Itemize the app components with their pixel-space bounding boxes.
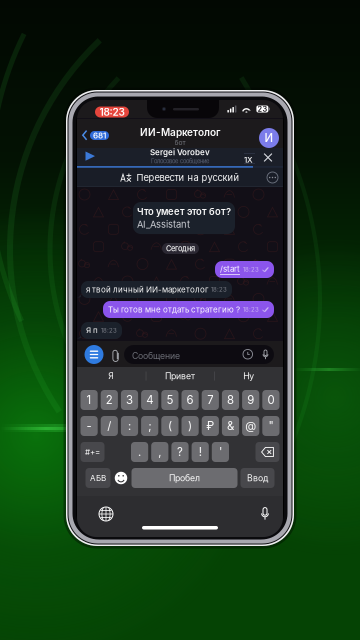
button[interactable]: Record voice message (259, 346, 272, 362)
staticText: 8 (227, 393, 234, 407)
button[interactable]: 3 (121, 390, 138, 410)
staticText: 18:23 (243, 306, 259, 313)
staticText: , (158, 445, 161, 459)
button[interactable]: 9 (242, 390, 259, 410)
button[interactable]: Close player (259, 149, 276, 166)
button[interactable]: #+= (80, 442, 104, 462)
staticText: 681 (93, 131, 106, 140)
staticText: 18:23 (243, 266, 259, 273)
button[interactable]: Я (77, 367, 146, 385)
staticText: Ну (243, 371, 254, 381)
staticText: ' (219, 445, 222, 459)
button[interactable]: Attach (107, 346, 123, 365)
staticText: 18:23 (211, 286, 227, 293)
button[interactable]: ( (161, 416, 178, 436)
staticText: ) (188, 419, 192, 433)
staticText: ! (199, 445, 202, 459)
staticText: 0 (267, 393, 274, 407)
staticText: Я (108, 371, 114, 381)
button[interactable]: 0 (262, 390, 279, 410)
button[interactable]: ) (181, 416, 199, 436)
button[interactable]: Profile (259, 128, 279, 148)
staticText: " (268, 419, 273, 433)
button[interactable]: & (222, 416, 239, 436)
button[interactable]: Switch keyboard language (94, 502, 118, 526)
staticText: /start (220, 264, 240, 274)
button[interactable]: Schedule message (240, 346, 255, 362)
button[interactable]: " (262, 416, 279, 436)
staticText: #+= (85, 447, 100, 457)
button[interactable]: ' (212, 442, 229, 462)
button[interactable]: АБВ (85, 468, 110, 488)
staticText: & (227, 419, 234, 433)
staticText: 2 (106, 393, 113, 407)
staticText: ₽ (206, 419, 214, 433)
staticText: / (107, 419, 111, 433)
staticText: Сегодня (166, 244, 195, 253)
staticText: AI_Assistant (137, 219, 190, 230)
staticText: 23 (257, 105, 267, 113)
button[interactable]: 2 (101, 390, 118, 410)
button[interactable]: Play voice message (80, 146, 100, 166)
button[interactable]: 4 (141, 390, 158, 410)
staticText: Что умеет этот бот? (137, 206, 231, 217)
button[interactable]: Emoji keyboard (113, 468, 128, 488)
staticText: Ты готов мне отдать стратегию ? (108, 305, 240, 314)
button[interactable]: 1 (80, 390, 98, 410)
button[interactable]: 8 (222, 390, 239, 410)
button[interactable]: - (80, 416, 98, 436)
staticText: Пробел (169, 473, 200, 483)
staticText: 1X (244, 155, 253, 165)
button[interactable]: / (101, 416, 118, 436)
staticText: 3 (126, 393, 133, 407)
button[interactable]: ; (141, 416, 158, 436)
staticText: 7 (207, 393, 213, 407)
staticText: Сообщение (132, 350, 180, 361)
button[interactable]: Ввод (240, 468, 274, 488)
button[interactable]: Back (77, 120, 115, 151)
button[interactable]: @ (242, 416, 259, 436)
staticText: ? (177, 445, 183, 459)
staticText: И (264, 131, 273, 145)
button[interactable]: Привет (146, 367, 214, 385)
staticText: ИИ-Маркетолог (140, 126, 220, 138)
staticText: Голосовое сообщение (151, 158, 209, 164)
staticText: Я п (86, 326, 98, 335)
staticText: Ввод (247, 473, 268, 483)
staticText: Перевести на русский (136, 172, 239, 183)
button[interactable]: Ну (214, 367, 283, 385)
staticText: ( (168, 419, 172, 433)
button[interactable]: 5 (161, 390, 178, 410)
staticText: 18:23 (99, 106, 124, 118)
staticText: - (87, 419, 92, 433)
staticText: 18:23 (101, 327, 117, 334)
staticText: Привет (165, 371, 195, 381)
button[interactable]: : (121, 416, 138, 436)
button[interactable]: , (151, 442, 168, 462)
staticText: 6 (187, 393, 194, 407)
button[interactable]: ! (192, 442, 209, 462)
button[interactable]: ? (171, 442, 189, 462)
staticText: бот (174, 138, 185, 147)
staticText: 4 (146, 393, 153, 407)
staticText: 5 (166, 393, 173, 407)
button[interactable]: Playback speed (241, 150, 258, 167)
button[interactable]: ₽ (202, 416, 219, 436)
button[interactable]: 6 (181, 390, 199, 410)
button[interactable]: Перевести на русский (77, 168, 283, 187)
staticText: : (128, 419, 131, 433)
staticText: Sergei Vorobev (150, 147, 210, 157)
staticText: 1 (87, 393, 92, 407)
staticText: ; (148, 419, 151, 433)
button[interactable]: . (131, 442, 148, 462)
button[interactable]: Bot menu (84, 345, 103, 364)
button[interactable]: Пробел (131, 468, 237, 488)
button[interactable]: More options (263, 168, 282, 187)
button[interactable]: Backspace (255, 442, 279, 462)
staticText: 9 (247, 393, 254, 407)
button[interactable]: 7 (202, 390, 219, 410)
button[interactable]: Dictate (255, 502, 275, 526)
staticText: я твой личный ИИ-маркетолог (86, 285, 208, 294)
staticText: АБВ (90, 473, 106, 483)
staticText: @ (245, 419, 256, 433)
